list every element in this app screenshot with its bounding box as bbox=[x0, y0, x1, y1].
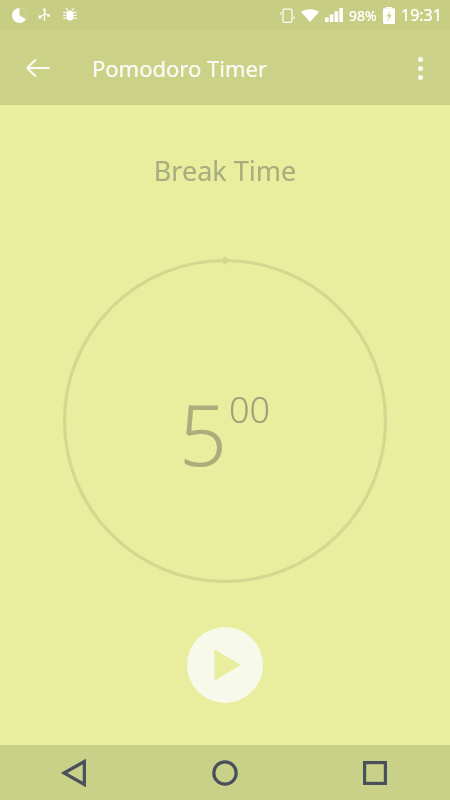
button[interactable]: Start timer bbox=[187, 627, 263, 703]
staticText: 98% bbox=[349, 6, 377, 25]
button[interactable]: Home bbox=[150, 745, 300, 800]
staticText: 19:31 bbox=[401, 4, 442, 26]
staticText: Break Time bbox=[0, 152, 450, 189]
button[interactable]: Recent apps bbox=[300, 745, 450, 800]
staticText: 00 bbox=[229, 385, 271, 434]
button[interactable]: More options bbox=[396, 44, 444, 92]
button[interactable]: Back bbox=[14, 44, 62, 92]
staticText: 5 bbox=[179, 376, 227, 490]
staticText: Pomodoro Timer bbox=[92, 53, 267, 83]
button[interactable]: Back bbox=[0, 745, 150, 800]
